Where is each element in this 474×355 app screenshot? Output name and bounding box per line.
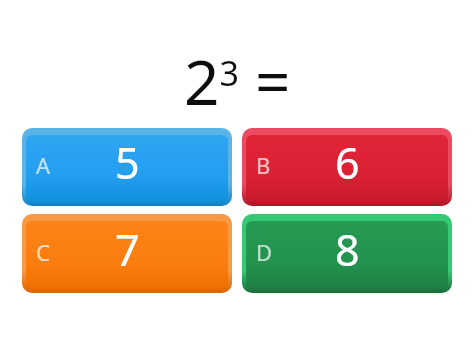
button[interactable]: B <box>242 128 452 206</box>
staticText: 23 = <box>184 39 291 123</box>
staticText: A <box>36 150 51 180</box>
button[interactable]: A <box>22 128 232 206</box>
staticText: 5 <box>115 133 140 192</box>
staticText: B <box>256 150 271 180</box>
staticText: 8 <box>335 220 360 279</box>
button[interactable]: C <box>22 214 232 293</box>
button[interactable]: D <box>242 214 452 293</box>
staticText: C <box>36 237 50 267</box>
staticText: 7 <box>115 220 140 279</box>
staticText: 6 <box>335 133 360 192</box>
staticText: D <box>256 237 273 267</box>
